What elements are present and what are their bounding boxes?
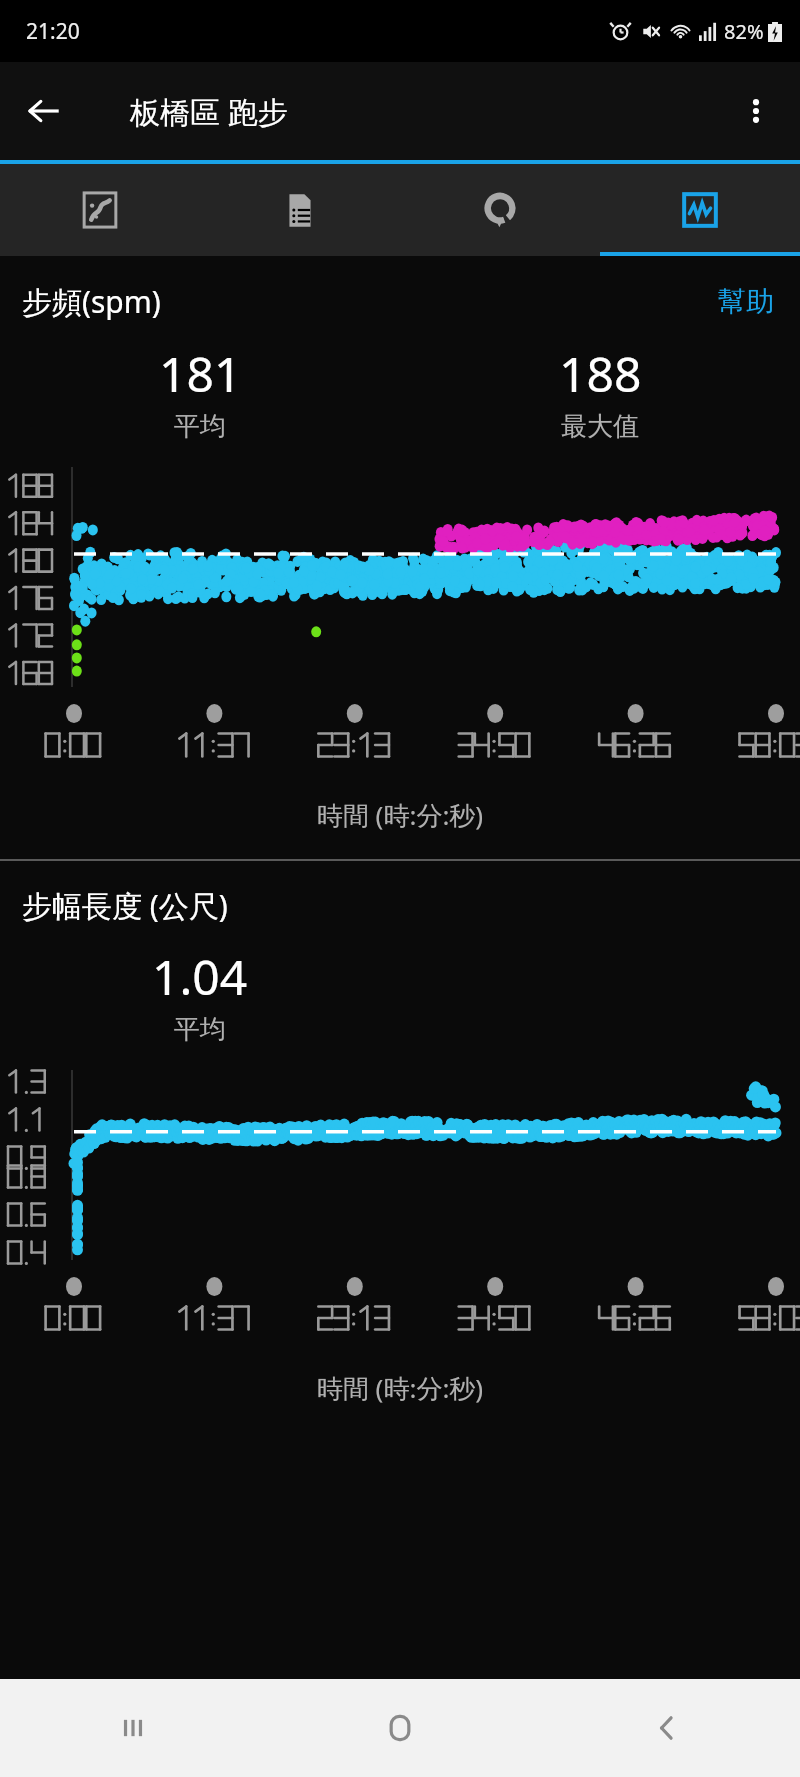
staticText: 181 bbox=[159, 341, 242, 406]
staticText: 板橋區 跑步 bbox=[130, 91, 288, 132]
button[interactable]: Recents bbox=[0, 1679, 266, 1777]
staticText: 步頻(spm) bbox=[22, 281, 161, 322]
staticText: 1.04 bbox=[152, 944, 248, 1009]
staticText: 最大值 bbox=[561, 410, 639, 443]
button[interactable]: Back bbox=[533, 1679, 800, 1777]
staticText: 平均 bbox=[174, 1013, 226, 1046]
staticText: 188 bbox=[559, 341, 642, 406]
staticText: 平均 bbox=[174, 410, 226, 443]
button[interactable]: More options bbox=[724, 79, 788, 143]
staticText: 時間 (時:分:秒) bbox=[0, 1370, 800, 1406]
staticText: 幫助 bbox=[718, 284, 774, 319]
staticText: 82% bbox=[724, 18, 764, 45]
staticText: 21:20 bbox=[26, 17, 80, 46]
button[interactable]: Details bbox=[200, 164, 400, 256]
button[interactable]: Laps bbox=[400, 164, 600, 256]
button[interactable]: Back bbox=[12, 79, 76, 143]
staticText: 步幅長度 (公尺) bbox=[22, 885, 228, 926]
staticText: 時間 (時:分:秒) bbox=[0, 797, 800, 833]
button[interactable]: Charts bbox=[600, 164, 800, 256]
button[interactable]: Home bbox=[266, 1679, 533, 1777]
button[interactable]: 幫助 bbox=[714, 280, 778, 323]
button[interactable]: Map bbox=[0, 164, 200, 256]
